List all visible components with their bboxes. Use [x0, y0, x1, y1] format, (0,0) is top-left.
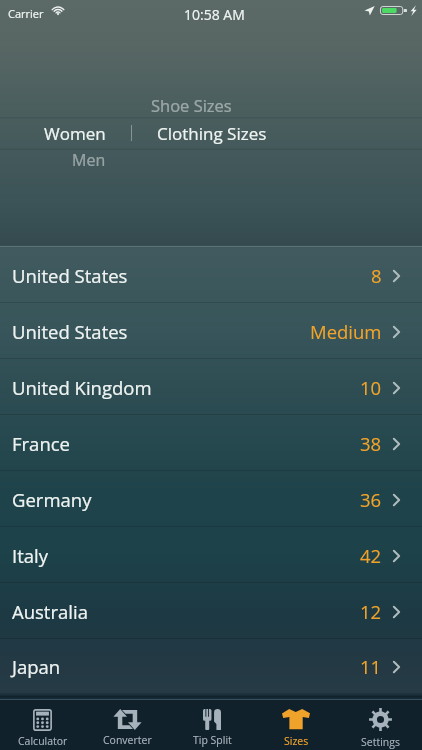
- button[interactable]: Tip Split: [170, 700, 254, 750]
- button[interactable]: Australia: [0, 583, 422, 639]
- staticText: Settings: [361, 735, 400, 749]
- button[interactable]: Converter: [85, 700, 170, 750]
- staticText: Italy: [12, 543, 48, 568]
- staticText: United Kingdom: [12, 375, 152, 400]
- button[interactable]: France: [0, 415, 422, 471]
- staticText: Calculator: [18, 734, 68, 748]
- staticText: Australia: [12, 599, 88, 624]
- staticText: Shoe Sizes: [151, 94, 232, 116]
- staticText: Converter: [103, 733, 152, 747]
- staticText: United States: [12, 319, 128, 344]
- staticText: 10:58 AM: [184, 5, 245, 24]
- staticText: Sizes: [284, 734, 309, 748]
- button[interactable]: United States: [0, 247, 422, 303]
- staticText: Medium: [310, 319, 382, 344]
- button[interactable]: Italy: [0, 527, 422, 583]
- button[interactable]: Sizes: [254, 700, 338, 750]
- staticText: Men: [72, 149, 106, 171]
- button[interactable]: Calculator: [0, 700, 85, 750]
- staticText: 12: [360, 599, 382, 624]
- staticText: 8: [371, 263, 382, 288]
- button[interactable]: Japan: [0, 639, 422, 694]
- staticText: France: [12, 431, 70, 456]
- staticText: Tip Split: [193, 733, 232, 747]
- staticText: United States: [12, 263, 128, 288]
- button[interactable]: Settings: [338, 700, 422, 750]
- staticText: Japan: [12, 654, 61, 679]
- staticText: Carrier: [8, 6, 44, 21]
- staticText: 36: [360, 487, 382, 512]
- button[interactable]: United States: [0, 303, 422, 359]
- button[interactable]: Germany: [0, 471, 422, 527]
- staticText: 10: [360, 375, 382, 400]
- staticText: Clothing Sizes: [157, 122, 267, 145]
- staticText: Germany: [12, 487, 92, 512]
- staticText: 38: [360, 431, 382, 456]
- staticText: 11: [360, 654, 382, 679]
- staticText: 42: [360, 543, 382, 568]
- staticText: Women: [44, 122, 106, 145]
- button[interactable]: United Kingdom: [0, 359, 422, 415]
